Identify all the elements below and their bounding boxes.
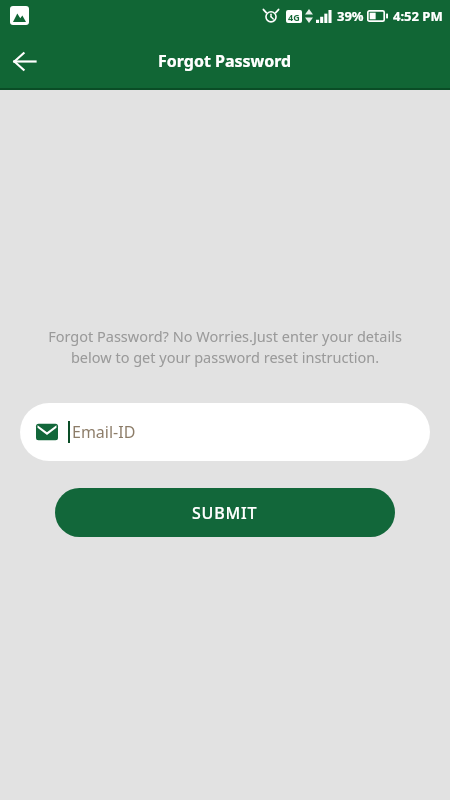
button[interactable]: Back <box>0 37 48 85</box>
staticText: 4:52 PM <box>393 7 443 25</box>
staticText: Forgot Password? No Worries.Just enter y… <box>32 326 418 368</box>
button[interactable]: SUBMIT <box>55 488 395 537</box>
staticText: Email-ID <box>72 421 136 443</box>
staticText: 4G <box>288 11 300 23</box>
button[interactable]: Email-ID <box>20 403 430 461</box>
staticText: Forgot Password <box>158 50 292 72</box>
staticText: 39% <box>337 7 364 25</box>
staticText: SUBMIT <box>192 502 258 524</box>
